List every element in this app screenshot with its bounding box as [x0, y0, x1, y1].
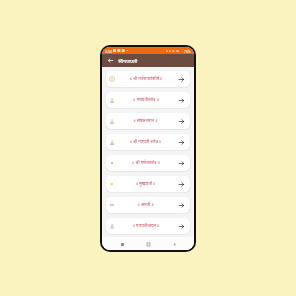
button[interactable]: ॥ श्री गणेशाथर्वशीर्ष ॥: [106, 71, 190, 87]
button[interactable]: ॥ गणपतीस्तोत्र ॥: [106, 92, 190, 108]
staticText: ॥ गणपतीस्तोत्र ॥: [133, 97, 159, 103]
staticText: श्रीगणपती: [118, 57, 138, 64]
button[interactable]: ॥ सुखकर्ता ॥: [106, 176, 190, 192]
button[interactable]: ॥ संकष्टनाशन ॥: [106, 113, 190, 129]
button[interactable]: Back: [106, 56, 115, 65]
other: Open: [179, 140, 184, 145]
staticText: 76%: [184, 49, 191, 53]
other: Open: [179, 77, 184, 82]
staticText: ॥ सुखकर्ता ॥: [135, 181, 156, 187]
staticText: ॥ आरती ॥: [137, 202, 154, 208]
button[interactable]: Back: [168, 238, 180, 250]
other: Open: [179, 119, 184, 124]
button[interactable]: ॥ श्री गणपती स्तोत्र ॥: [106, 134, 190, 150]
staticText: ॥ श्री गणपती स्तोत्र ॥: [129, 139, 162, 145]
button[interactable]: Home: [142, 238, 154, 250]
staticText: ॥ गणपतीस्तवन ॥: [132, 223, 160, 229]
button[interactable]: ॥ आरती ॥: [106, 197, 190, 213]
other: Open: [179, 161, 184, 166]
staticText: ॥ श्री गणेशस्तोत्र ॥: [132, 160, 160, 166]
other: Open: [179, 182, 184, 187]
button[interactable]: ॥ गणपतीस्तवन ॥: [106, 218, 190, 234]
staticText: 4:44: [105, 49, 112, 53]
button[interactable]: Recents: [116, 238, 128, 250]
other: Open: [179, 98, 184, 103]
other: Open: [179, 203, 184, 208]
staticText: ॥ श्री गणेशाथर्वशीर्ष ॥: [129, 76, 163, 82]
button[interactable]: ॥ श्री गणेशस्तोत्र ॥: [106, 155, 190, 171]
staticText: ॥ संकष्टनाशन ॥: [133, 118, 158, 124]
other: Open: [179, 224, 184, 229]
